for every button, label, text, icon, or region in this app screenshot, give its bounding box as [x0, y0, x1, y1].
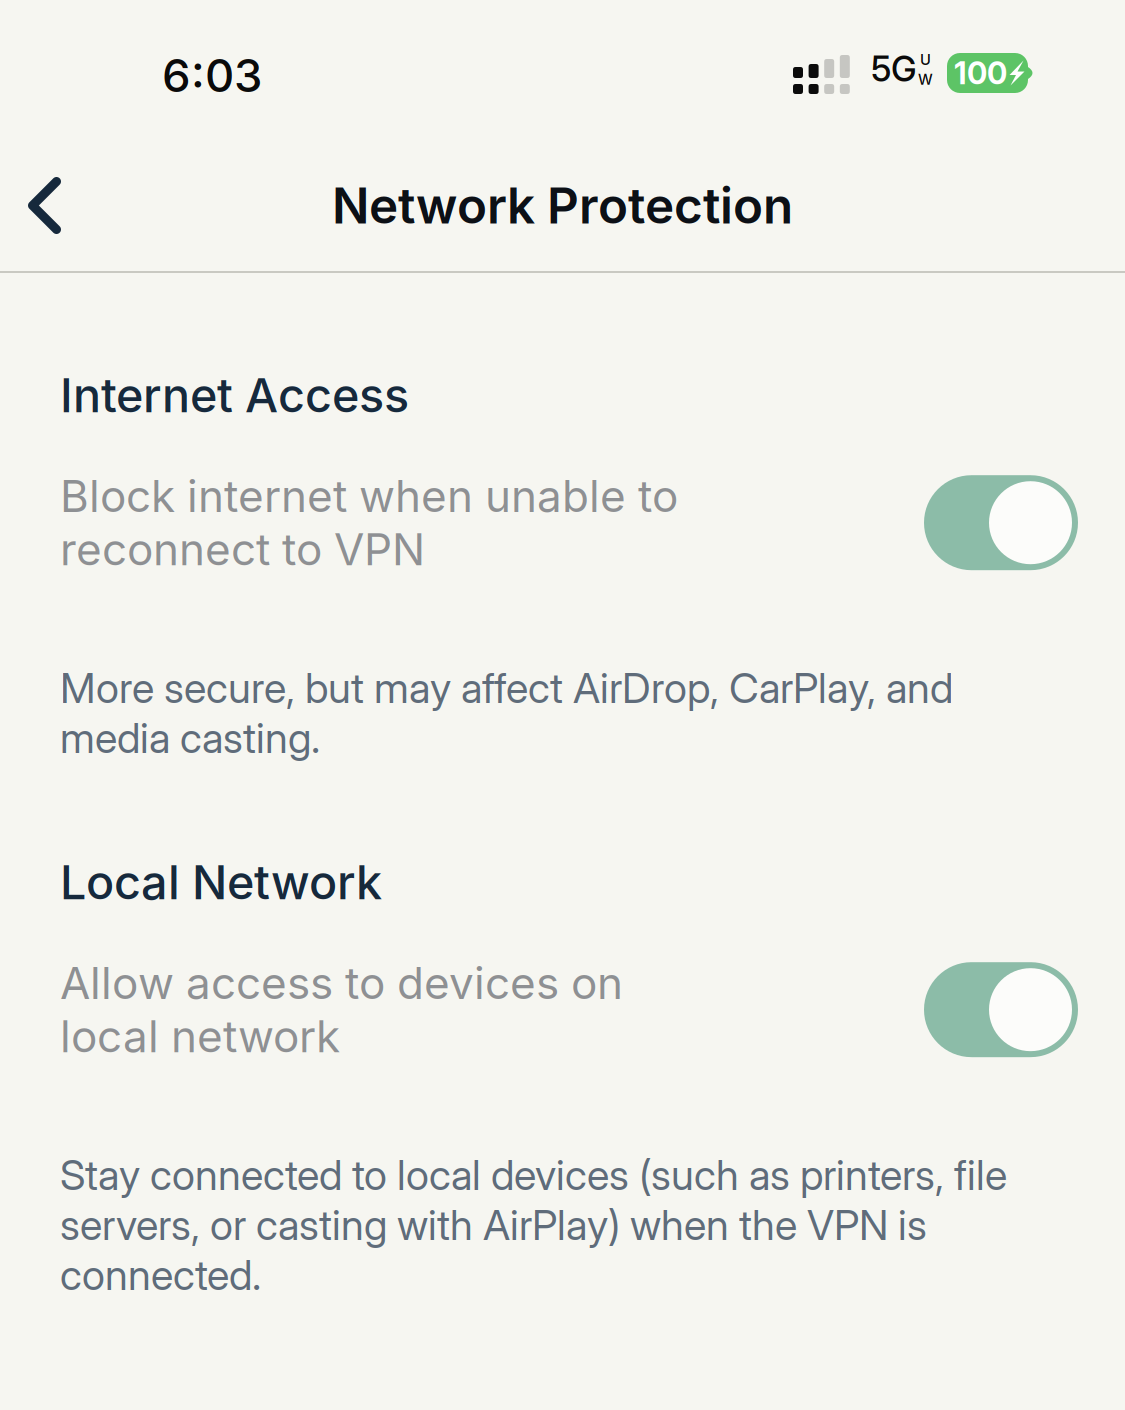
staticText: 100	[954, 54, 1007, 91]
staticText: Stay connected to local devices (such as…	[60, 1150, 1007, 1300]
button[interactable]: Back	[0, 155, 105, 256]
staticText: W	[918, 70, 933, 88]
staticText: Local Network	[60, 854, 382, 910]
button[interactable]: Allow access to devices on local network	[60, 956, 1078, 1063]
staticText: 6:03	[162, 48, 262, 103]
staticText: Allow access to devices on local network	[60, 956, 623, 1063]
staticText: Block internet when unable to reconnect …	[60, 469, 678, 576]
staticText: U	[920, 51, 931, 68]
button[interactable]: Block internet when unable to reconnect …	[60, 469, 1078, 576]
staticText: Internet Access	[60, 367, 409, 423]
staticText: Network Protection	[332, 176, 793, 235]
staticText: 5G	[871, 48, 917, 90]
staticText: More secure, but may affect AirDrop, Car…	[60, 663, 953, 763]
